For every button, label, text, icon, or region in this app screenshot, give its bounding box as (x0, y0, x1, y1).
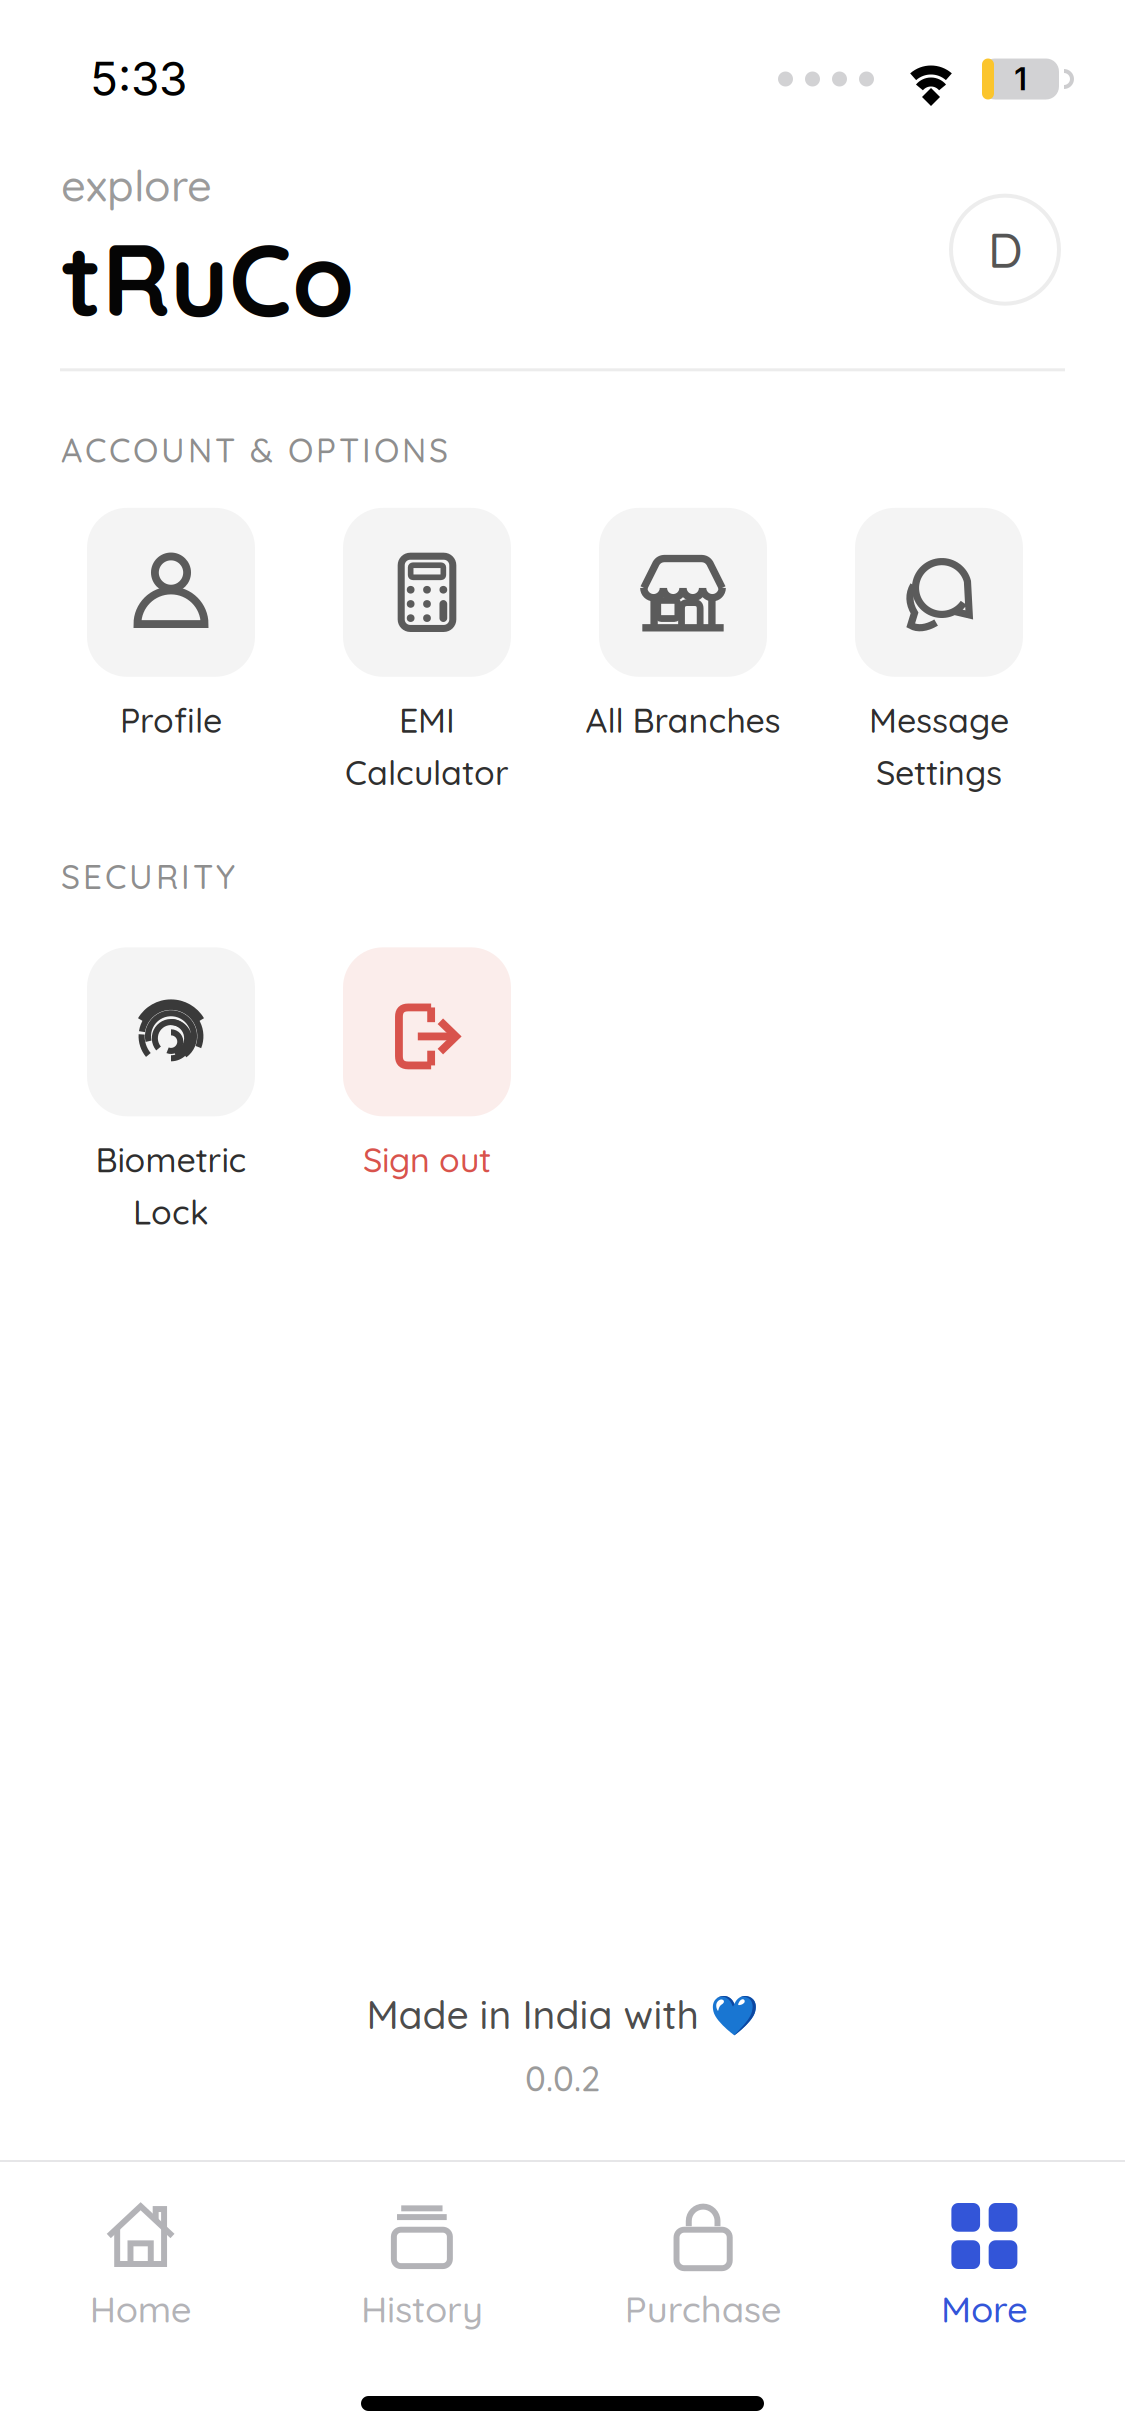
staticText: History (361, 2286, 483, 2332)
button[interactable]: Biometric (87, 947, 343, 1274)
button[interactable]: All Branches (599, 508, 855, 835)
staticText: Home (90, 2286, 192, 2332)
staticText: Settings (876, 751, 1002, 793)
staticText: explore (61, 158, 212, 212)
staticText: Purchase (625, 2286, 782, 2332)
button[interactable]: EMI (343, 508, 599, 835)
staticText: Calculator (345, 751, 509, 793)
staticText: Message (869, 699, 1009, 741)
staticText: A C C O U N T & O P T I O N S (61, 429, 448, 471)
button[interactable]: More (844, 2198, 1125, 2332)
button[interactable]: Message (855, 508, 1111, 835)
button[interactable]: History (281, 2198, 562, 2332)
staticText: 1 (1014, 60, 1026, 97)
staticText: Biometric (95, 1138, 246, 1181)
button[interactable]: Purchase (562, 2198, 844, 2332)
staticText: Profile (120, 699, 222, 741)
staticText: Lock (133, 1191, 209, 1233)
button[interactable]: Account (940, 185, 1070, 315)
staticText: Sign out (363, 1138, 491, 1181)
staticText: tRuCo (61, 216, 354, 341)
staticText: D (988, 220, 1022, 280)
button[interactable]: Profile (87, 508, 343, 835)
staticText: All Branches (585, 699, 780, 741)
staticText: EMI (399, 699, 455, 741)
staticText: Made in India with 💙 (366, 1990, 758, 2039)
staticText: S E C U R I T Y (61, 856, 235, 897)
button[interactable]: Home (0, 2198, 281, 2332)
staticText: 0.0.2 (525, 2057, 600, 2100)
staticText: More (941, 2286, 1028, 2332)
button[interactable]: Sign out (343, 947, 599, 1274)
staticText: 5:33 (90, 51, 187, 107)
